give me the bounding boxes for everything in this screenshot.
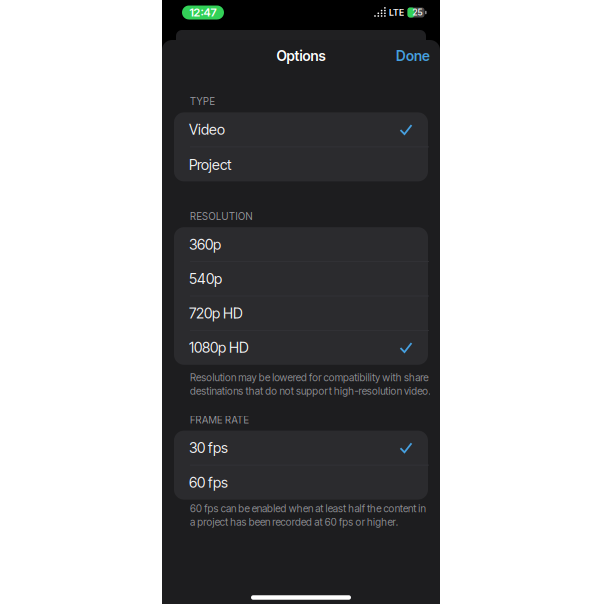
staticText: Options xyxy=(276,48,325,64)
staticText: 60 fps xyxy=(189,474,228,491)
staticText: 25 xyxy=(412,7,422,18)
staticText: 30 fps xyxy=(189,439,228,456)
button[interactable]: Video xyxy=(174,113,428,147)
button[interactable]: Done xyxy=(390,43,436,69)
staticText: 12:47 xyxy=(189,6,216,19)
staticText: Resolution may be lowered for compatibil… xyxy=(190,371,428,383)
staticText: Project xyxy=(189,156,232,173)
staticText: 540p xyxy=(189,270,222,287)
button[interactable]: 1080p HD xyxy=(174,331,428,365)
staticText: Done xyxy=(396,48,430,64)
button[interactable]: Project xyxy=(174,148,428,182)
staticText: LTE xyxy=(389,7,404,18)
staticText: Video xyxy=(189,121,225,138)
staticText: 360p xyxy=(189,236,221,253)
button[interactable]: 540p xyxy=(174,262,428,296)
button[interactable]: 720p HD xyxy=(174,296,428,330)
staticText: 720p HD xyxy=(189,305,243,322)
button[interactable]: 30 fps xyxy=(174,431,428,465)
staticText: 1080p HD xyxy=(189,339,249,356)
staticText: FRAME RATE xyxy=(190,414,248,426)
staticText: 60 fps can be enabled when at least half… xyxy=(190,502,425,514)
staticText: a project has been recorded at 60 fps or… xyxy=(190,516,398,528)
button[interactable]: 60 fps xyxy=(174,465,428,499)
staticText: TYPE xyxy=(190,96,214,107)
button[interactable]: 360p xyxy=(174,227,428,261)
staticText: destinations that do not support high-re… xyxy=(190,385,430,397)
staticText: RESOLUTION xyxy=(190,211,252,222)
